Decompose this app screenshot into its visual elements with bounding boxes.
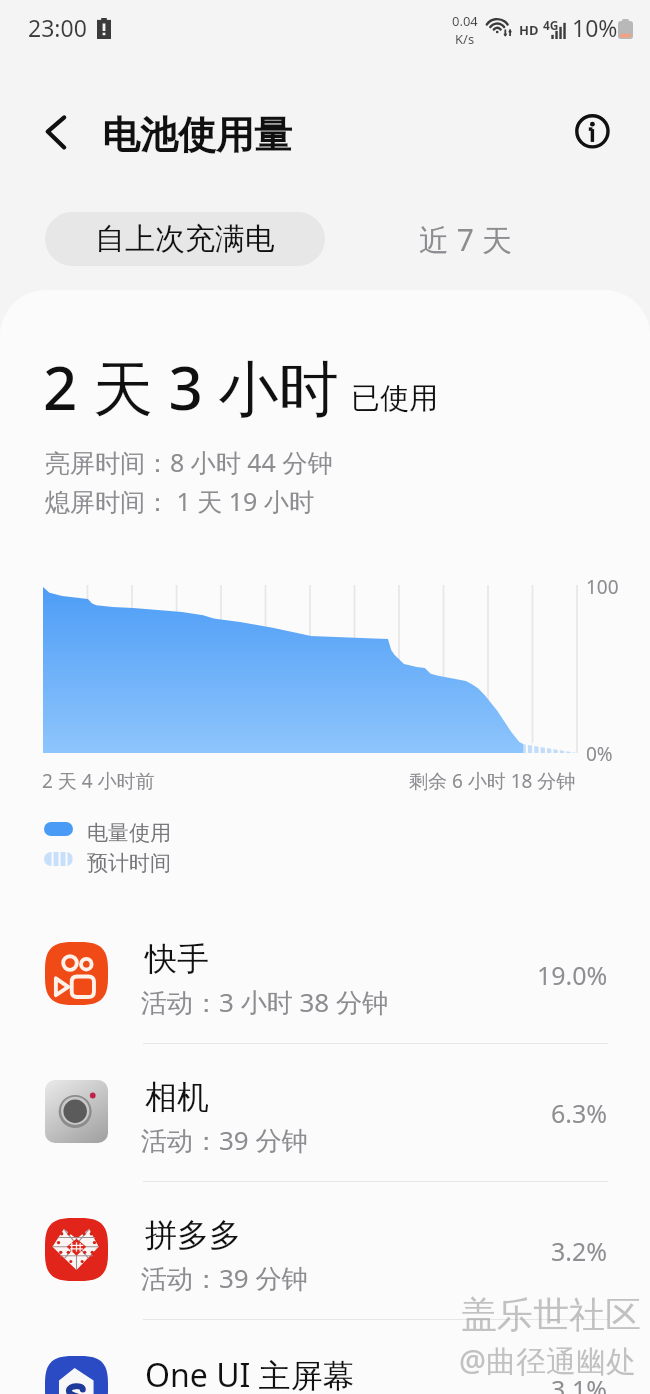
staticText: 3.2%: [551, 1234, 608, 1268]
staticText: 电池使用量: [102, 111, 292, 159]
button[interactable]: Back: [30, 106, 82, 158]
staticText: 活动：39 分钟: [141, 1260, 308, 1296]
button[interactable]: 近 7 天: [372, 212, 558, 266]
staticText: 电量使用: [87, 820, 171, 846]
button[interactable]: 快手: [0, 905, 650, 1043]
staticText: 2 天 4 小时前: [42, 768, 155, 794]
staticText: 熄屏时间： 1 天 19 小时: [45, 484, 314, 518]
staticText: 预计时间: [87, 850, 171, 876]
button[interactable]: 拼多多: [0, 1181, 650, 1319]
staticText: 活动：3 小时 38 分钟: [141, 984, 388, 1020]
staticText: K/s: [455, 30, 475, 48]
staticText: One UI 主屏幕: [145, 1353, 355, 1394]
staticText: 3.1%: [551, 1372, 608, 1394]
staticText: 已使用: [351, 380, 438, 417]
button[interactable]: One UI 主屏幕: [0, 1319, 650, 1394]
staticText: 亮屏时间：8 小时 44 分钟: [45, 445, 333, 479]
staticText: 快手: [145, 939, 209, 979]
button[interactable]: 相机: [0, 1043, 650, 1181]
staticText: 23:00: [28, 12, 87, 43]
staticText: 盖乐世社区: [461, 1292, 641, 1337]
staticText: 6.3%: [551, 1096, 608, 1130]
staticText: 相机: [145, 1077, 209, 1117]
staticText: 100: [586, 574, 619, 600]
staticText: 2 天 3 小时: [43, 346, 339, 428]
button[interactable]: 自上次充满电: [45, 212, 325, 266]
staticText: 拼多多: [145, 1215, 241, 1255]
staticText: 剩余 6 小时 18 分钟: [409, 768, 576, 794]
staticText: HD: [519, 21, 539, 39]
staticText: @曲径通幽处: [459, 1340, 636, 1381]
staticText: 自上次充满电: [95, 220, 275, 258]
staticText: 10%: [572, 12, 618, 43]
staticText: 4G: [543, 17, 559, 33]
staticText: 近 7 天: [419, 219, 512, 260]
staticText: 活动：39 分钟: [141, 1122, 308, 1158]
button[interactable]: Information: [570, 109, 615, 154]
staticText: 19.0%: [537, 958, 608, 992]
staticText: 0%: [586, 741, 613, 767]
staticText: 0.04: [452, 12, 478, 30]
